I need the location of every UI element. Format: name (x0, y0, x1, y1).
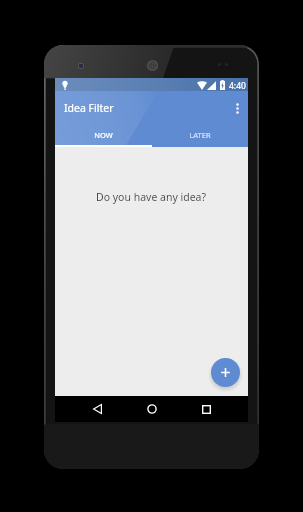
button[interactable]: More options (226, 97, 248, 119)
button[interactable]: Home (141, 398, 163, 420)
button[interactable]: NOW (55, 125, 151, 147)
staticText: Idea Filter (64, 101, 114, 115)
staticText: Do you have any idea? (96, 190, 207, 204)
button[interactable]: Add idea (211, 358, 240, 387)
staticText: 4:40 (229, 80, 246, 92)
button[interactable]: Back (86, 398, 108, 420)
button[interactable]: LATER (151, 125, 248, 147)
staticText: LATER (189, 130, 211, 140)
staticText: NOW (94, 130, 113, 140)
button[interactable]: Recent apps (195, 398, 217, 420)
